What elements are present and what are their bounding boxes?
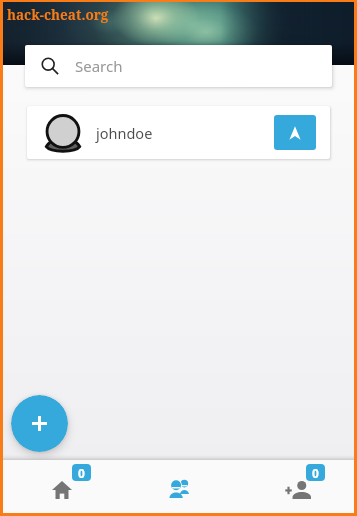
button[interactable]: johndoe bbox=[27, 106, 330, 159]
staticText: Search bbox=[75, 56, 123, 76]
staticText: 0 bbox=[78, 465, 85, 481]
staticText: 0 bbox=[312, 465, 319, 481]
staticText: hack-cheat.org bbox=[7, 6, 109, 24]
button[interactable]: Search bbox=[25, 45, 332, 87]
staticText: johndoe bbox=[96, 123, 153, 143]
button[interactable]: Add bbox=[11, 395, 68, 452]
button[interactable]: Add friend bbox=[237, 460, 354, 513]
button[interactable]: Friends bbox=[120, 460, 237, 513]
button[interactable]: Navigate bbox=[274, 115, 316, 150]
button[interactable]: Home bbox=[3, 460, 120, 513]
